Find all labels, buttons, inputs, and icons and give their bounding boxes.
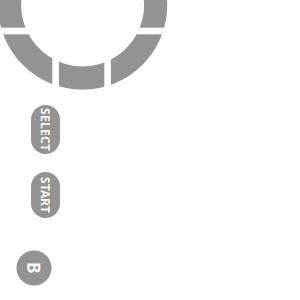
- button[interactable]: START: [31, 172, 60, 218]
- staticText: B: [28, 256, 40, 279]
- button[interactable]: SELECT: [31, 105, 60, 154]
- staticText: START: [27, 187, 63, 203]
- button[interactable]: B: [16, 250, 51, 286]
- staticText: SELECT: [24, 121, 67, 137]
